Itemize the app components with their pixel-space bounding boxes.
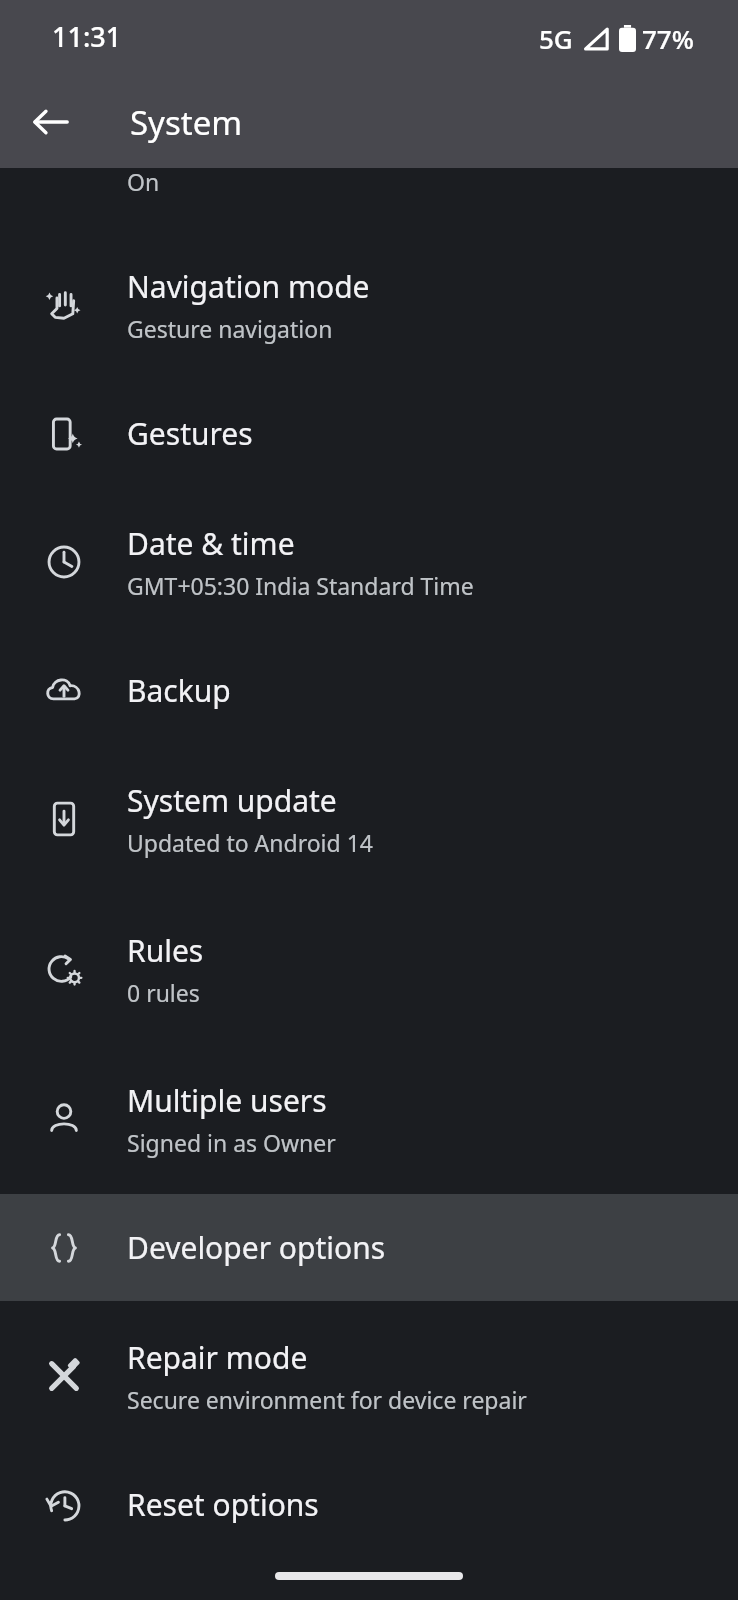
- staticText: Signed in as Owner: [127, 1127, 336, 1158]
- staticText: Developer options: [127, 1227, 386, 1268]
- staticText: Rules: [127, 930, 204, 971]
- staticText: Repair mode: [127, 1337, 308, 1378]
- button[interactable]: Rules: [0, 894, 738, 1044]
- staticText: 5G: [539, 21, 573, 56]
- staticText: 0 rules: [127, 977, 200, 1008]
- button[interactable]: Repair mode: [0, 1301, 738, 1451]
- staticText: Secure environment for device repair: [127, 1384, 527, 1415]
- staticText: System: [130, 100, 243, 145]
- staticText: 11:31: [52, 18, 122, 55]
- button[interactable]: Backup: [0, 637, 738, 744]
- staticText: Updated to Android 14: [127, 827, 373, 858]
- button[interactable]: Developer options: [0, 1194, 738, 1301]
- button[interactable]: Gestures: [0, 380, 738, 487]
- staticText: Reset options: [127, 1484, 319, 1525]
- staticText: GMT+05:30 India Standard Time: [127, 570, 474, 601]
- staticText: Backup: [127, 670, 231, 711]
- staticText: System update: [127, 780, 337, 821]
- staticText: Multiple users: [127, 1080, 327, 1121]
- button[interactable]: Navigation mode: [0, 230, 738, 380]
- staticText: Gestures: [127, 413, 253, 454]
- staticText: Date & time: [127, 523, 295, 564]
- staticText: Gesture navigation: [127, 313, 333, 344]
- button[interactable]: System update: [0, 744, 738, 894]
- staticText: 77%: [642, 21, 694, 56]
- button[interactable]: Multiple users: [0, 1044, 738, 1194]
- staticText: Navigation mode: [127, 266, 370, 307]
- button[interactable]: Back: [12, 83, 90, 161]
- button[interactable]: Reset options: [0, 1451, 738, 1558]
- button[interactable]: Date & time: [0, 487, 738, 637]
- staticText: On: [127, 166, 160, 197]
